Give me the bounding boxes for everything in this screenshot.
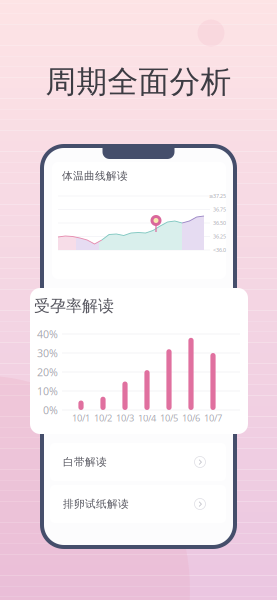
staticText: 10/6 bbox=[182, 412, 200, 424]
staticText: 36.25 bbox=[213, 233, 226, 240]
staticText: 10/4 bbox=[138, 412, 156, 424]
staticText: 10% bbox=[37, 384, 58, 398]
staticText: 10/2 bbox=[94, 412, 112, 424]
staticText: 周期全面分析 bbox=[45, 63, 231, 101]
staticText: 10/3 bbox=[116, 412, 134, 424]
staticText: 10/5 bbox=[160, 412, 178, 424]
staticText: 0% bbox=[43, 403, 58, 417]
staticText: 10/1 bbox=[72, 412, 90, 424]
button[interactable]: 排卵试纸解读 bbox=[50, 485, 226, 523]
staticText: <36.0 bbox=[213, 246, 226, 254]
staticText: 体温曲线解读 bbox=[62, 169, 128, 182]
staticText: 40% bbox=[37, 327, 58, 341]
staticText: 排卵试纸解读 bbox=[63, 497, 129, 510]
staticText: 36.50 bbox=[213, 219, 226, 227]
staticText: 36.75 bbox=[213, 206, 226, 213]
staticText: 受孕率解读 bbox=[34, 296, 114, 316]
staticText: 白带解读 bbox=[63, 455, 107, 468]
button[interactable]: 白带解读 bbox=[50, 443, 226, 481]
staticText: 30% bbox=[37, 346, 58, 360]
staticText: ≥37.25 bbox=[209, 192, 226, 200]
staticText: 10/7 bbox=[204, 412, 222, 424]
staticText: 20% bbox=[37, 365, 58, 379]
